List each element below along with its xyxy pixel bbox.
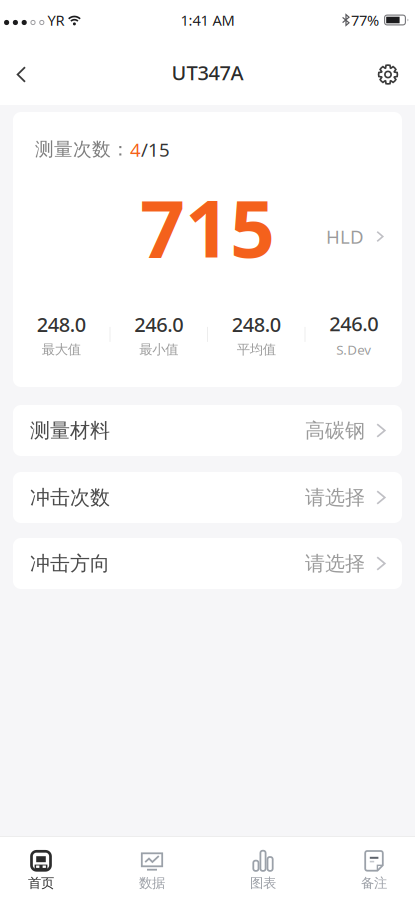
staticText: 715 [140,175,275,279]
staticText: 最大值 [42,341,81,358]
staticText: YR [47,10,64,30]
staticText: 246.0 [329,310,378,337]
button[interactable]: 数据 [111,850,193,891]
staticText: 数据 [139,875,165,891]
button[interactable]: 首页 [0,850,82,891]
staticText: 248.0 [232,311,281,337]
staticText: 248.0 [37,311,86,337]
staticText: 77% [351,10,379,30]
staticText: 1:41 AM [180,10,234,30]
staticText: 高碳钢 [305,418,365,443]
staticText: 请选择 [305,551,365,576]
staticText: 测量材料 [30,418,110,443]
button[interactable]: Back [0,62,27,83]
staticText: /15 [141,137,170,162]
button[interactable]: 备注 [333,850,415,891]
staticText: UT347A [171,59,243,86]
staticText: 请选择 [305,485,365,510]
button[interactable]: 图表 [222,850,304,891]
staticText: 测量次数： [35,138,130,161]
button[interactable]: 冲击方向 [13,538,402,589]
staticText: 4 [130,137,141,162]
staticText: 冲击次数 [30,485,110,510]
button[interactable]: 测量材料 [13,405,402,456]
button[interactable]: 冲击次数 [13,472,402,523]
staticText: 最小值 [139,341,178,358]
staticText: 图表 [250,875,276,891]
button[interactable]: Settings [377,59,415,85]
staticText: 平均值 [237,341,276,358]
staticText: HLD [326,224,364,249]
staticText: 246.0 [134,311,183,337]
button[interactable]: HLD [326,224,384,249]
staticText: 首页 [28,875,54,891]
staticText: 备注 [361,875,387,891]
staticText: 冲击方向 [30,551,110,576]
staticText: S.Dev [336,341,371,358]
